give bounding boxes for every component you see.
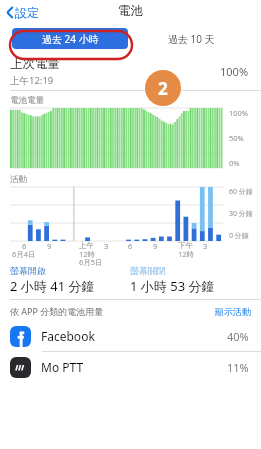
staticText: 100% (220, 64, 249, 79)
staticText: 3 (203, 241, 208, 251)
staticText: 2 (158, 77, 168, 100)
staticText: 活動 (10, 174, 27, 185)
staticText: 電池 (118, 3, 143, 19)
button[interactable]: 顯示活動 (215, 306, 251, 317)
staticText: 1 小時 53 分鐘 (130, 277, 215, 295)
staticText: 6 (128, 241, 133, 251)
staticText: 上次電量 (10, 56, 60, 72)
staticText: 螢幕關閉 (130, 265, 166, 276)
staticText: 9 (153, 241, 158, 251)
staticText: 3 (104, 241, 109, 251)
staticText: 9 (47, 241, 52, 251)
staticText: 過去 24 小時 (42, 32, 99, 46)
staticText: 12時 (178, 249, 195, 259)
staticText: 上午12:19 (10, 74, 54, 87)
staticText: 顯示活動 (215, 306, 251, 317)
staticText: 60 分鐘 (229, 187, 253, 197)
staticText: 過去 10 天 (168, 32, 215, 46)
staticText: 螢幕開啟 (10, 265, 46, 276)
staticText: 6月5日 (79, 257, 103, 267)
staticText: 2 小時 41 分鐘 (10, 277, 95, 295)
staticText: 0 分鐘 (229, 231, 249, 241)
staticText: 100% (229, 108, 249, 118)
button[interactable]: 設定 (4, 3, 41, 22)
staticText: 6 (22, 241, 27, 251)
staticText: 30 分鐘 (229, 209, 253, 219)
button[interactable]: 過去 24 小時 (12, 28, 128, 49)
staticText: 40% (227, 329, 249, 344)
button[interactable]: Facebook (0, 321, 261, 351)
staticText: 依 APP 分類的電池用量 (10, 305, 215, 317)
button[interactable]: 過去 10 天 (133, 28, 249, 49)
staticText: 上午 (79, 241, 94, 250)
staticText: Mo PTT (41, 359, 227, 375)
staticText: 12時 (79, 249, 96, 259)
staticText: 11% (227, 360, 249, 375)
staticText: 電池電量 (10, 95, 44, 106)
staticText: Facebook (41, 328, 227, 344)
staticText: 50% (229, 133, 244, 143)
staticText: 0% (229, 158, 240, 168)
button[interactable]: Mo PTT (0, 352, 261, 382)
staticText: 設定 (15, 5, 39, 20)
staticText: 下午 (178, 241, 193, 250)
staticText: 6月4日 (12, 249, 36, 259)
